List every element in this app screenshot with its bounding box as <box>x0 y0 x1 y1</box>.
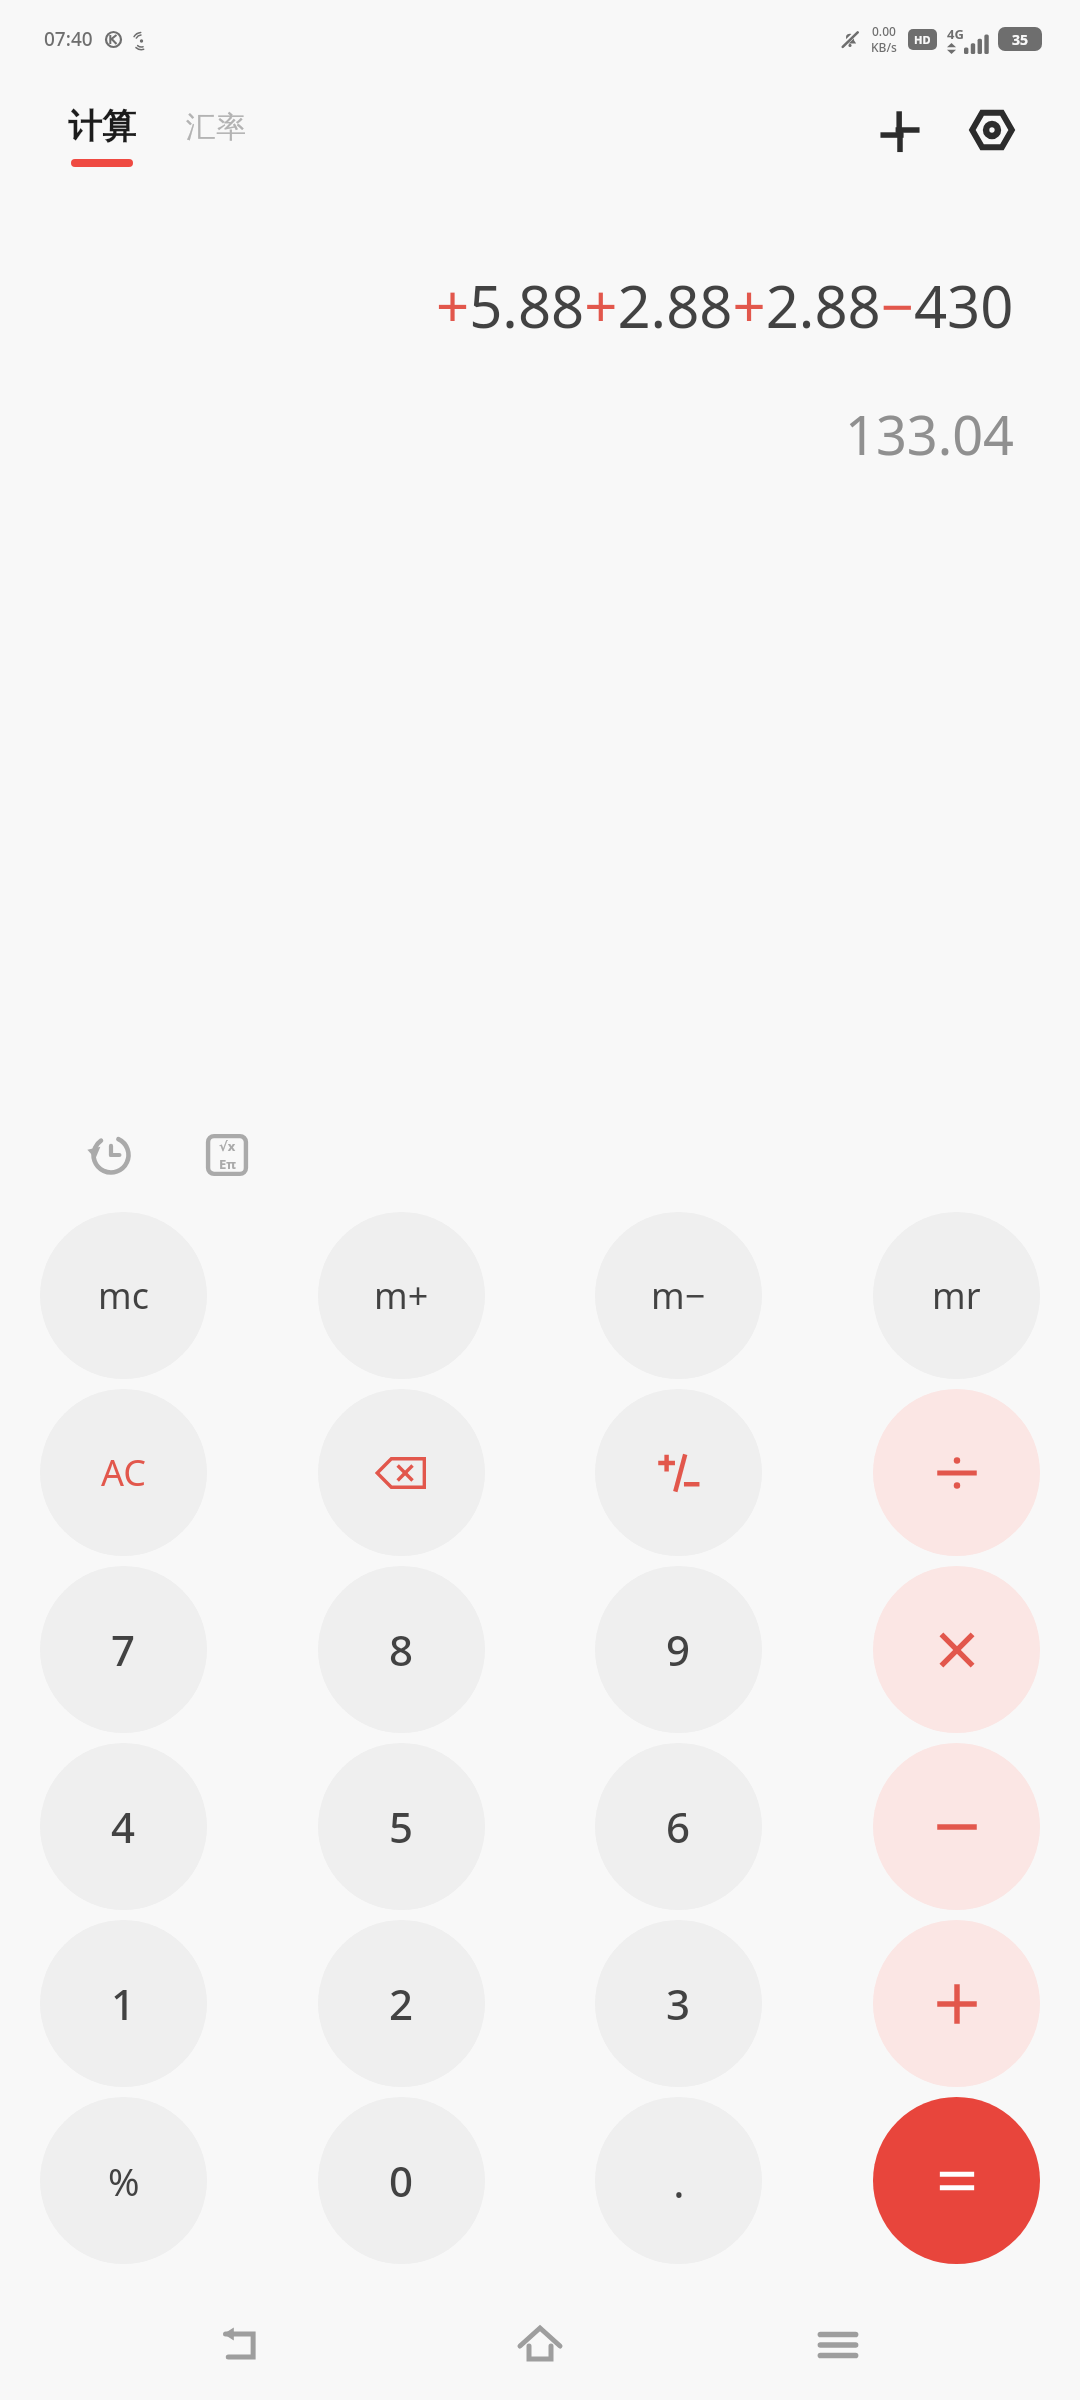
button[interactable]: 8 <box>318 1566 485 1733</box>
staticText: 2 <box>389 1975 414 2032</box>
staticText: √x <box>219 1137 236 1155</box>
button[interactable]: Back <box>188 2290 298 2400</box>
staticText: m− <box>651 1271 706 1320</box>
staticText: KB/s <box>871 39 897 55</box>
staticText: 6 <box>666 1798 691 1855</box>
button[interactable]: 5 <box>318 1743 485 1910</box>
staticText: 7 <box>111 1621 136 1678</box>
button[interactable]: Float window <box>868 98 932 162</box>
staticText: 计算 <box>68 105 136 148</box>
button[interactable]: 4 <box>40 1743 207 1910</box>
staticText: 07:40 <box>44 26 93 52</box>
staticText: m+ <box>374 1271 429 1320</box>
button[interactable]: Subtract <box>873 1743 1040 1910</box>
button[interactable]: 计算 <box>66 105 138 167</box>
button[interactable]: mc <box>40 1212 207 1379</box>
button[interactable]: AC <box>40 1389 207 1556</box>
staticText: mr <box>932 1271 981 1320</box>
button[interactable]: Home <box>485 2290 595 2400</box>
staticText: AC <box>101 1448 147 1497</box>
button[interactable]: Recent apps <box>783 2290 893 2400</box>
button[interactable]: 9 <box>595 1566 762 1733</box>
button[interactable]: Divide <box>873 1389 1040 1556</box>
staticText: 0.00 <box>872 23 896 39</box>
button[interactable]: . <box>595 2097 762 2264</box>
staticText: 5 <box>389 1798 414 1855</box>
staticText: 1 <box>111 1975 136 2032</box>
button[interactable]: m+ <box>318 1212 485 1379</box>
staticText: 3 <box>666 1975 691 2032</box>
button[interactable]: m− <box>595 1212 762 1379</box>
button[interactable]: Backspace <box>318 1389 485 1556</box>
staticText: 8 <box>389 1621 414 1678</box>
button[interactable]: Toggle sign <box>595 1389 762 1556</box>
staticText: 4 <box>111 1798 136 1855</box>
button[interactable]: 0 <box>318 2097 485 2264</box>
staticText: 9 <box>666 1621 691 1678</box>
staticText: 35 <box>1012 30 1029 49</box>
button[interactable]: Add <box>873 1920 1040 2087</box>
staticText: HD <box>914 32 931 47</box>
staticText: 0 <box>389 2152 414 2209</box>
button[interactable]: Multiply <box>873 1566 1040 1733</box>
button[interactable]: Equals <box>873 2097 1040 2264</box>
button[interactable]: mr <box>873 1212 1040 1379</box>
staticText: % <box>108 2155 140 2207</box>
staticText: mc <box>98 1271 149 1320</box>
staticText: Eπ <box>219 1155 236 1173</box>
staticText: 4G <box>947 25 964 43</box>
button[interactable]: 6 <box>595 1743 762 1910</box>
button[interactable]: 3 <box>595 1920 762 2087</box>
staticText: 汇率 <box>186 108 246 146</box>
staticText: +5.88+2.88+2.88−430 <box>436 266 1014 345</box>
button[interactable]: Scientific <box>192 1120 262 1190</box>
staticText: . <box>673 2151 685 2211</box>
button[interactable]: 1 <box>40 1920 207 2087</box>
button[interactable]: 汇率 <box>184 117 248 155</box>
staticText: 133.04 <box>845 397 1014 471</box>
button[interactable]: 7 <box>40 1566 207 1733</box>
button[interactable]: 2 <box>318 1920 485 2087</box>
button[interactable]: Settings <box>960 98 1024 162</box>
button[interactable]: % <box>40 2097 207 2264</box>
button[interactable]: History <box>76 1120 146 1190</box>
